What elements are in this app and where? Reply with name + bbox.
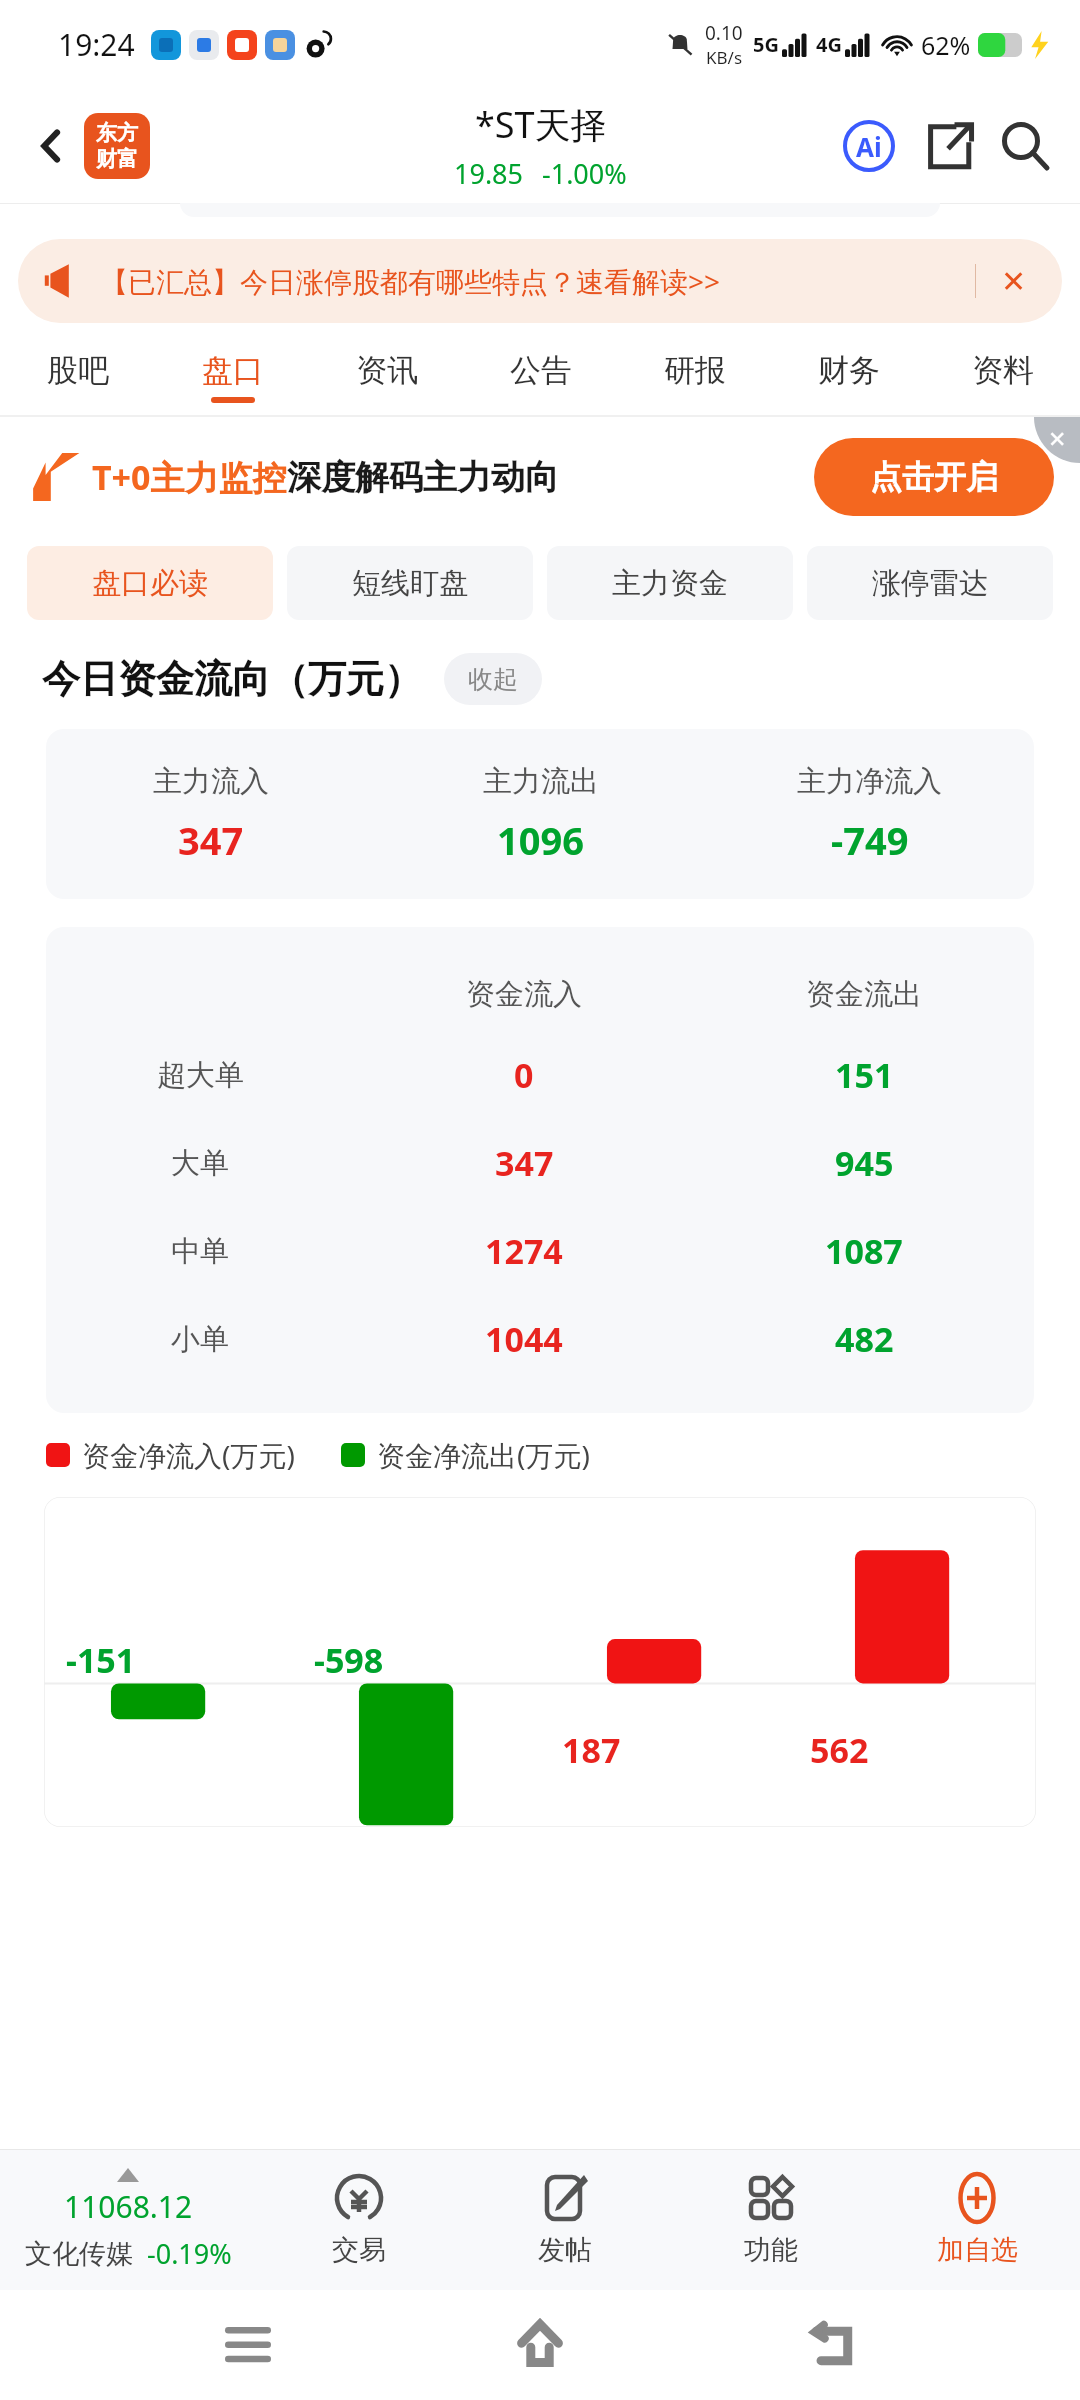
staticText: 4G	[816, 31, 842, 58]
button[interactable]: Back	[788, 2300, 878, 2390]
staticText: 资金流入	[466, 976, 582, 1013]
staticText: 1044	[485, 1316, 563, 1362]
staticText: 【已汇总】今日涨停股都有哪些特点？速看解读>>	[100, 262, 721, 300]
staticText: 11068.12	[64, 2186, 193, 2227]
button[interactable]: 主力资金	[547, 546, 793, 620]
staticText: ✕	[1001, 264, 1027, 299]
button[interactable]: 功能	[668, 2150, 874, 2290]
button[interactable]: 收起	[444, 653, 542, 705]
button[interactable]: 加自选	[874, 2150, 1080, 2290]
staticText: ✕	[1048, 427, 1067, 453]
staticText: -749	[831, 814, 909, 866]
staticText: 小单	[171, 1321, 229, 1358]
staticText: 公告	[510, 351, 572, 390]
staticText: -151	[66, 1637, 136, 1683]
staticText: 945	[835, 1140, 894, 1186]
button[interactable]: 点击开启	[814, 438, 1054, 516]
staticText: 资料	[972, 351, 1034, 390]
staticText: -0.19%	[147, 2235, 232, 2272]
staticText: 中单	[171, 1233, 229, 1270]
button[interactable]: 涨停雷达	[807, 546, 1053, 620]
staticText: 研报	[664, 351, 726, 390]
staticText: 文化传媒	[25, 2237, 133, 2271]
button[interactable]: Close ad	[1034, 417, 1080, 463]
staticText: -598	[314, 1637, 384, 1683]
button[interactable]: 资金流入	[46, 927, 1034, 1413]
staticText: 19.85	[454, 155, 524, 192]
staticText: 主力流出	[483, 763, 599, 800]
button[interactable]: 东方财富	[84, 113, 150, 179]
staticText: 资金净流出(万元)	[377, 1436, 590, 1474]
button[interactable]: 交易	[256, 2150, 462, 2290]
staticText: 187	[562, 1727, 621, 1773]
staticText: 资讯	[356, 351, 418, 390]
staticText: 562	[810, 1727, 869, 1773]
staticText: 1096	[497, 814, 584, 866]
staticText: 347	[178, 814, 244, 866]
staticText: 今日资金流向（万元）	[42, 655, 422, 703]
staticText: 482	[835, 1316, 894, 1362]
staticText: Ai	[856, 129, 882, 164]
staticText: 主力资金	[612, 565, 728, 602]
button[interactable]: Back	[22, 117, 80, 175]
staticText: -1.00%	[542, 155, 627, 192]
button[interactable]: 公告	[464, 339, 618, 415]
staticText: T+0主力监控	[92, 454, 287, 500]
button[interactable]: AI	[838, 115, 900, 177]
button[interactable]: 【已汇总】今日涨停股都有哪些特点？速看解读>>	[18, 239, 1062, 323]
staticText: 盘口	[202, 351, 264, 390]
button[interactable]: 主力流入	[46, 729, 1034, 899]
staticText: 大单	[171, 1145, 229, 1182]
button[interactable]: 短线盯盘	[287, 546, 533, 620]
button[interactable]: 盘口必读	[27, 546, 273, 620]
staticText: 1087	[825, 1228, 903, 1274]
button[interactable]: Home	[495, 2300, 585, 2390]
staticText: 深度解码主力动向	[287, 456, 559, 499]
staticText: 加自选	[937, 2233, 1018, 2267]
button[interactable]: 盘口	[155, 339, 310, 415]
staticText: 0.10	[705, 20, 743, 46]
staticText: 涨停雷达	[872, 565, 988, 602]
staticText: KB/s	[706, 46, 743, 69]
staticText: 发帖	[538, 2233, 592, 2267]
staticText: 主力净流入	[797, 763, 942, 800]
button[interactable]: Close	[992, 259, 1036, 303]
staticText: 超大单	[157, 1057, 244, 1094]
staticText: 主力流入	[153, 763, 269, 800]
staticText: 1274	[485, 1228, 563, 1274]
button[interactable]: 财务	[772, 339, 926, 415]
staticText: 19:24	[58, 24, 135, 65]
staticText: 点击开启	[870, 457, 998, 497]
button[interactable]: 11068.12	[0, 2150, 256, 2290]
staticText: 62%	[921, 28, 971, 62]
button[interactable]: Share	[918, 115, 980, 177]
staticText: 盘口必读	[92, 565, 208, 602]
staticText: 股吧	[47, 351, 109, 390]
staticText: 财务	[818, 351, 880, 390]
staticText: 0	[514, 1052, 534, 1098]
staticText: *ST天择	[475, 100, 607, 149]
staticText: 347	[495, 1140, 554, 1186]
staticText: 功能	[744, 2233, 798, 2267]
staticText: 交易	[332, 2233, 386, 2267]
staticText: 收起	[468, 664, 518, 695]
button[interactable]: 发帖	[462, 2150, 668, 2290]
button[interactable]: 资料	[926, 339, 1080, 415]
button[interactable]: Search	[994, 115, 1056, 177]
button[interactable]: 研报	[618, 339, 772, 415]
staticText: 财富	[96, 146, 138, 172]
button[interactable]: 股吧	[0, 339, 155, 415]
staticText: 151	[835, 1052, 894, 1098]
button[interactable]: Recents	[203, 2300, 293, 2390]
staticText: 短线盯盘	[352, 565, 468, 602]
staticText: 5G	[753, 31, 779, 58]
button[interactable]: 资讯	[310, 339, 464, 415]
staticText: 东方	[96, 120, 138, 146]
staticText: 资金净流入(万元)	[82, 1436, 295, 1474]
staticText: 资金流出	[806, 976, 922, 1013]
